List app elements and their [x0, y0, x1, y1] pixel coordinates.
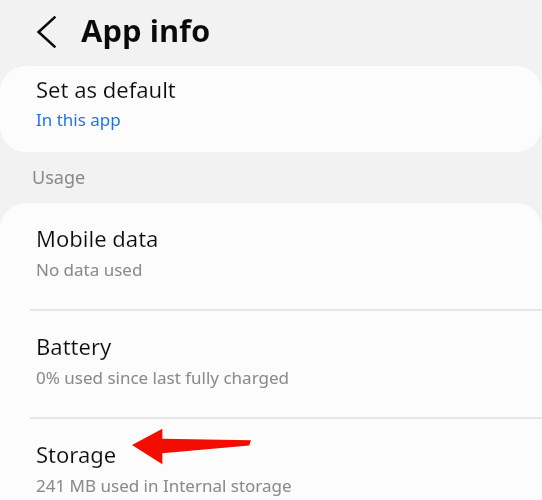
button[interactable]: Back [21, 6, 73, 58]
staticText: App info [81, 9, 211, 51]
staticText: Storage [36, 439, 117, 469]
button[interactable]: Set as default [0, 66, 542, 139]
staticText: Mobile data [36, 223, 159, 253]
button[interactable]: Battery [0, 311, 542, 417]
staticText: Set as default [36, 74, 176, 104]
button[interactable]: Storage [0, 419, 542, 500]
staticText: In this app [36, 108, 121, 131]
button[interactable]: Mobile data [0, 203, 542, 309]
staticText: No data used [36, 258, 143, 281]
staticText: 241 MB used in Internal storage [36, 474, 292, 497]
staticText: Usage [32, 165, 86, 190]
staticText: Battery [36, 331, 112, 361]
staticText: 0% used since last fully charged [36, 366, 289, 389]
